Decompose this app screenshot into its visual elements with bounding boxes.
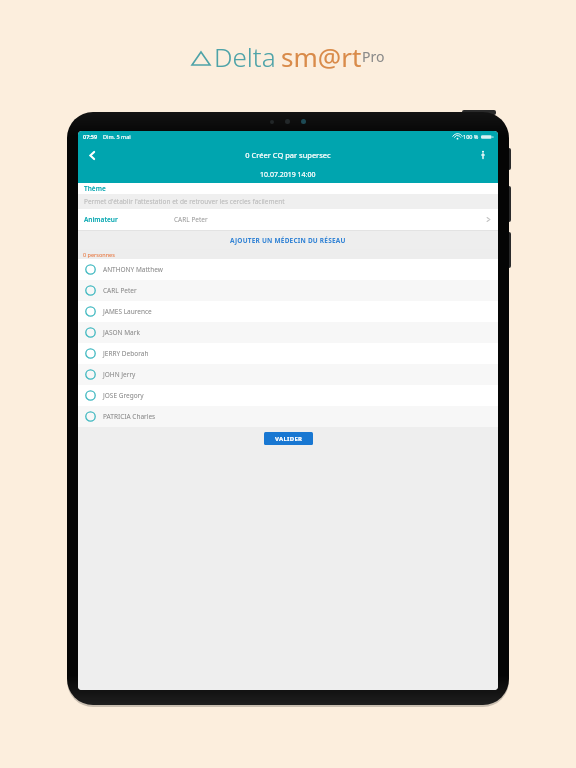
staticText: PATRICIA Charles	[103, 412, 156, 421]
button[interactable]: Retour	[81, 144, 103, 166]
staticText: Pro	[362, 47, 385, 66]
staticText: Permet d'établir l'attestation et de ret…	[84, 197, 285, 206]
staticText: sm@rt	[281, 39, 362, 74]
button[interactable]: ANTHONY Matthew	[78, 259, 498, 280]
button[interactable]: JAMES Laurence	[78, 301, 498, 322]
staticText: VALIDER	[275, 435, 303, 443]
staticText: 100 %	[463, 133, 479, 140]
staticText: 07:59	[83, 133, 98, 140]
button[interactable]: CARL Peter	[78, 280, 498, 301]
staticText: JOHN Jerry	[103, 370, 136, 379]
staticText: JASON Mark	[103, 328, 140, 337]
button[interactable]: VALIDER	[264, 432, 313, 445]
button[interactable]: AJOUTER UN MÉDECIN DU RÉSEAU	[78, 231, 498, 249]
staticText: Thème	[84, 184, 106, 193]
staticText: Delta	[214, 39, 276, 74]
staticText: Dim. 5 mai	[103, 133, 131, 140]
button[interactable]: Permet d'établir l'attestation et de ret…	[78, 194, 498, 209]
staticText: 0 Créer CQ par supersec	[245, 150, 331, 160]
staticText: CARL Peter	[103, 286, 137, 295]
staticText: ANTHONY Matthew	[103, 265, 163, 274]
button[interactable]: JASON Mark	[78, 322, 498, 343]
button[interactable]: JERRY Deborah	[78, 343, 498, 364]
staticText: 10.07.2019 14:00	[260, 170, 316, 180]
staticText: JAMES Laurence	[103, 307, 152, 316]
staticText: AJOUTER UN MÉDECIN DU RÉSEAU	[230, 236, 346, 245]
button[interactable]: Informations	[474, 146, 492, 164]
button[interactable]: JOHN Jerry	[78, 364, 498, 385]
button[interactable]: Animateur	[78, 209, 498, 230]
button[interactable]: PATRICIA Charles	[78, 406, 498, 427]
staticText: 0 personnes	[83, 251, 115, 258]
staticText: JOSE Gregory	[103, 391, 144, 400]
button[interactable]: JOSE Gregory	[78, 385, 498, 406]
staticText: JERRY Deborah	[103, 349, 149, 358]
staticText: Animateur	[84, 215, 118, 224]
staticText: CARL Peter	[174, 215, 208, 224]
